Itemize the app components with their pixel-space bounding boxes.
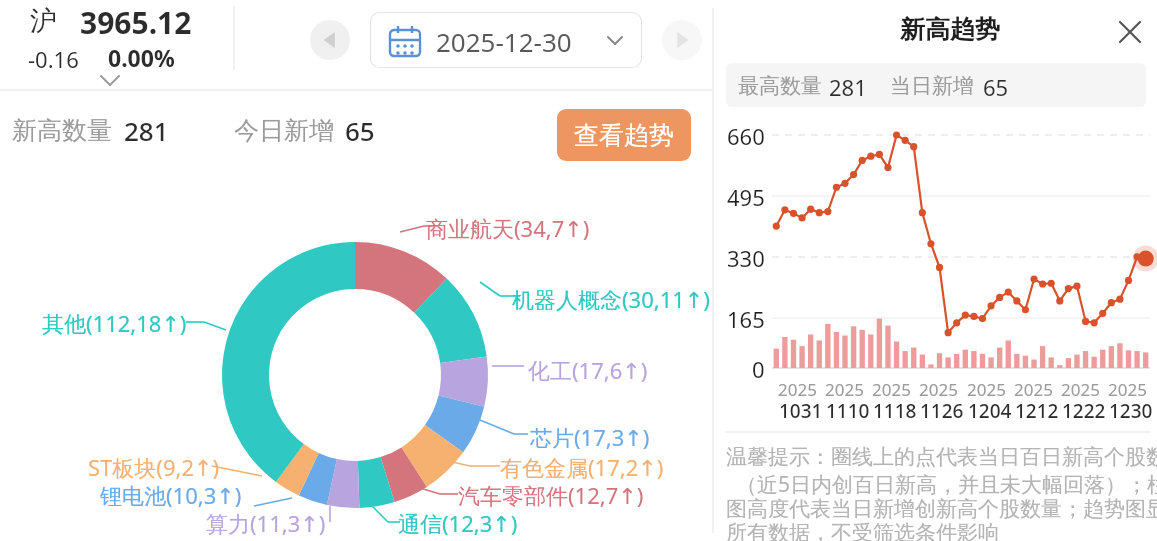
staticText: 281 (829, 72, 867, 102)
staticText: 图高度代表当日新增创新高个股数量；趋势图显示 (726, 496, 1157, 522)
staticText: 汽车零部件(12,7↑) (458, 480, 644, 510)
staticText: 1031 (779, 398, 823, 424)
staticText: 查看趋势 (574, 120, 674, 151)
staticText: 2025 (1108, 378, 1147, 401)
staticText: 330 (727, 243, 765, 273)
staticText: （近5日内创百日新高，并且未大幅回落）；柱状 (736, 470, 1157, 499)
staticText: 其他(112,18↑) (42, 308, 187, 338)
staticText: 1204 (968, 398, 1012, 424)
staticText: 3965.12 (80, 2, 192, 43)
staticText: 2025-12-30 (436, 24, 572, 59)
staticText: 2025 (967, 378, 1006, 401)
staticText: 商业航天(34,7↑) (426, 213, 590, 243)
staticText: -0.16 (28, 44, 79, 74)
staticText: 所有数据，不受筛选条件影响 (726, 520, 999, 541)
staticText: 1118 (873, 398, 917, 424)
staticText: 最高数量 (738, 73, 822, 99)
staticText: 2025 (1014, 378, 1053, 401)
staticText: 2025 (778, 378, 817, 401)
staticText: 1230 (1109, 398, 1153, 424)
staticText: 281 (124, 113, 169, 148)
staticText: 65 (345, 113, 375, 148)
staticText: 1222 (1062, 398, 1106, 424)
button[interactable]: Previous day (310, 20, 350, 60)
staticText: 算力(11,3↑) (206, 508, 326, 538)
staticText: 0.00% (108, 42, 175, 73)
staticText: 温馨提示：圈线上的点代表当日百日新高个股数量 (726, 444, 1157, 470)
staticText: 新高数量 (12, 115, 112, 146)
button[interactable]: Next day (662, 20, 702, 60)
staticText: 495 (727, 182, 765, 212)
staticText: 锂电池(10,3↑) (100, 480, 242, 510)
button[interactable]: 查看趋势 (557, 109, 691, 161)
staticText: 1110 (826, 398, 870, 424)
staticText: 165 (727, 304, 765, 334)
staticText: ST板块(9,2↑) (88, 452, 220, 482)
staticText: 2025 (825, 378, 864, 401)
staticText: 660 (727, 121, 765, 151)
staticText: 1126 (920, 398, 964, 424)
staticText: 化工(17,6↑) (528, 355, 648, 385)
staticText: 当日新增 (890, 73, 974, 99)
staticText: 2025 (1061, 378, 1100, 401)
staticText: 今日新增 (234, 115, 334, 146)
staticText: 沪 (30, 4, 57, 38)
staticText: 0 (752, 354, 765, 384)
staticText: 2025 (872, 378, 911, 401)
staticText: 新高趋势 (900, 14, 1000, 45)
staticText: 芯片(17,3↑) (530, 422, 650, 452)
staticText: 有色金属(17,2↑) (500, 452, 664, 482)
button[interactable]: Close (1108, 10, 1152, 54)
staticText: 65 (983, 72, 1009, 102)
staticText: 1212 (1015, 398, 1059, 424)
button[interactable]: 2025-12-30 (370, 12, 642, 68)
staticText: 2025 (919, 378, 958, 401)
staticText: 机器人概念(30,11↑) (512, 284, 710, 314)
staticText: 通信(12,3↑) (398, 508, 518, 538)
